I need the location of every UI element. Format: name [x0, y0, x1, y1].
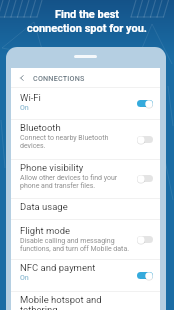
staticText: On: [20, 104, 29, 112]
button[interactable]: Mobile hotspot and tethering: [11, 291, 160, 310]
button[interactable]: Phone visibility: [11, 159, 160, 198]
staticText: Phone visibility: [20, 162, 84, 173]
button[interactable]: Bluetooth: [11, 119, 160, 159]
button[interactable]: Turn on: [137, 174, 153, 183]
staticText: On: [20, 274, 29, 282]
other: Back: [11, 68, 33, 87]
button[interactable]: Wi-Fi: [11, 87, 160, 119]
staticText: Mobile hotspot and tethering: [20, 294, 135, 310]
staticText: Bluetooth: [20, 122, 61, 133]
button[interactable]: Turn on: [137, 235, 153, 244]
button[interactable]: Back: [11, 68, 160, 87]
staticText: Flight mode: [20, 225, 71, 236]
button[interactable]: Flight mode: [11, 219, 160, 259]
staticText: NFC and payment: [20, 262, 96, 273]
staticText: Connect to nearby Bluetooth devices.: [20, 134, 135, 150]
button[interactable]: Turn off: [137, 99, 153, 108]
button[interactable]: Data usage: [11, 198, 160, 219]
staticText: Find the best connection spot for you.: [0, 8, 174, 35]
button[interactable]: Turn on: [137, 135, 153, 144]
staticText: Data usage: [20, 201, 68, 212]
staticText: Allow other devices to find your phone a…: [20, 174, 135, 190]
staticText: CONNECTIONS: [33, 74, 85, 82]
button[interactable]: NFC and payment: [11, 259, 160, 291]
staticText: Disable calling and messaging functions,…: [20, 237, 135, 253]
staticText: Wi-Fi: [20, 92, 41, 103]
button[interactable]: Turn off: [137, 271, 153, 280]
